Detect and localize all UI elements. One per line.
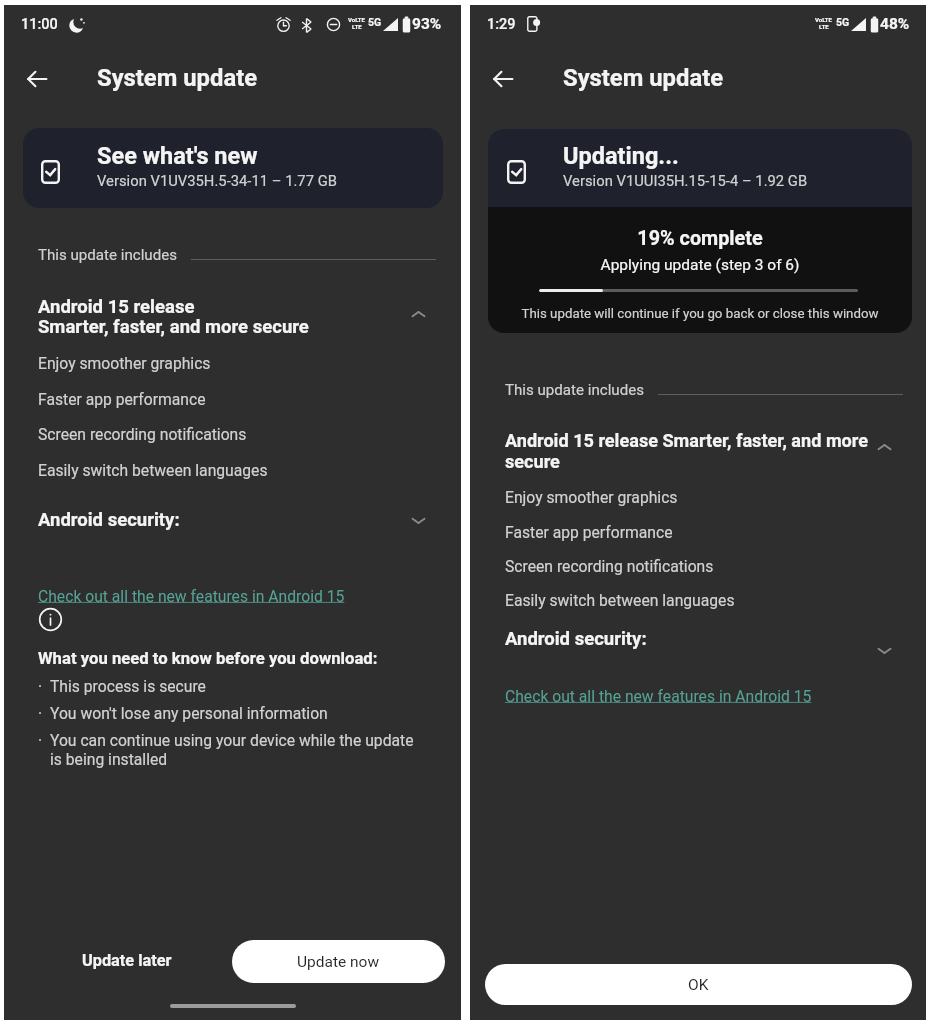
button[interactable]: OK — [485, 964, 912, 1005]
button[interactable] — [66, 942, 184, 982]
button[interactable]: Check out all the new features in Androi… — [505, 688, 812, 706]
staticText: Easily switch between languages — [38, 461, 268, 479]
staticText: Android security: — [38, 509, 180, 531]
staticText: This update includes — [505, 381, 644, 399]
staticText: Easily switch between languages — [505, 591, 735, 609]
staticText: Enjoy smoother graphics — [505, 488, 678, 506]
staticText: Applying update (step 3 of 6) — [488, 256, 912, 274]
staticText: You can continue using your device while… — [50, 731, 440, 769]
staticText: This update includes — [38, 246, 177, 264]
button[interactable]: Check out all the new features in Androi… — [38, 588, 345, 606]
button[interactable]: Collapse — [869, 432, 899, 462]
staticText: What you need to know before you downloa… — [38, 649, 378, 669]
staticText: · — [38, 704, 43, 722]
staticText: 5G — [368, 16, 382, 28]
staticText: LTE — [352, 23, 362, 30]
staticText: Screen recording notifications — [38, 425, 247, 443]
staticText: Update later — [82, 951, 172, 970]
staticText: Updating... — [563, 142, 679, 170]
staticText: 19% complete — [488, 227, 912, 250]
staticText: LTE — [819, 23, 829, 30]
staticText: Faster app performance — [38, 390, 206, 408]
button[interactable] — [23, 128, 443, 208]
button[interactable]: Expand — [403, 505, 433, 535]
button[interactable]: Back — [485, 61, 521, 97]
staticText: Version V1UV35H.5-34-11 – 1.77 GB — [97, 172, 337, 189]
staticText: VoLTE — [348, 16, 365, 23]
staticText: 11:00 — [21, 16, 58, 33]
staticText: 5G — [836, 16, 850, 28]
staticText: Check out all the new features in Androi… — [505, 687, 812, 705]
button[interactable]: More info — [38, 607, 63, 632]
button[interactable]: Expand — [869, 635, 899, 665]
staticText: See what's new — [97, 142, 258, 170]
button[interactable]: Collapse — [403, 299, 433, 329]
staticText: This update will continue if you go back… — [488, 306, 912, 322]
staticText: System update — [563, 64, 724, 92]
staticText: VoLTE — [815, 16, 832, 23]
staticText: Screen recording notifications — [505, 557, 714, 575]
staticText: Android security: — [505, 628, 647, 650]
button[interactable] — [488, 129, 912, 207]
staticText: 48% — [880, 15, 910, 33]
staticText: · — [38, 731, 43, 749]
staticText: Android 15 release Smarter, faster, and … — [38, 296, 309, 337]
staticText: Version V1UUI35H.15-15-4 – 1.92 GB — [563, 172, 808, 189]
staticText: You won't lose any personal information — [50, 704, 328, 722]
staticText: 1:29 — [487, 16, 516, 33]
staticText: OK — [688, 976, 709, 994]
button[interactable]: Update now — [232, 940, 445, 983]
staticText: Check out all the new features in Androi… — [38, 587, 345, 605]
staticText: Faster app performance — [505, 523, 673, 541]
staticText: Android 15 release Smarter, faster, and … — [505, 430, 873, 472]
staticText: System update — [97, 64, 258, 92]
staticText: This process is secure — [50, 677, 206, 695]
button[interactable]: Back — [19, 61, 55, 97]
staticText: Update now — [297, 953, 380, 971]
staticText: Enjoy smoother graphics — [38, 354, 211, 372]
staticText: · — [38, 677, 43, 695]
staticText: 93% — [412, 15, 442, 33]
